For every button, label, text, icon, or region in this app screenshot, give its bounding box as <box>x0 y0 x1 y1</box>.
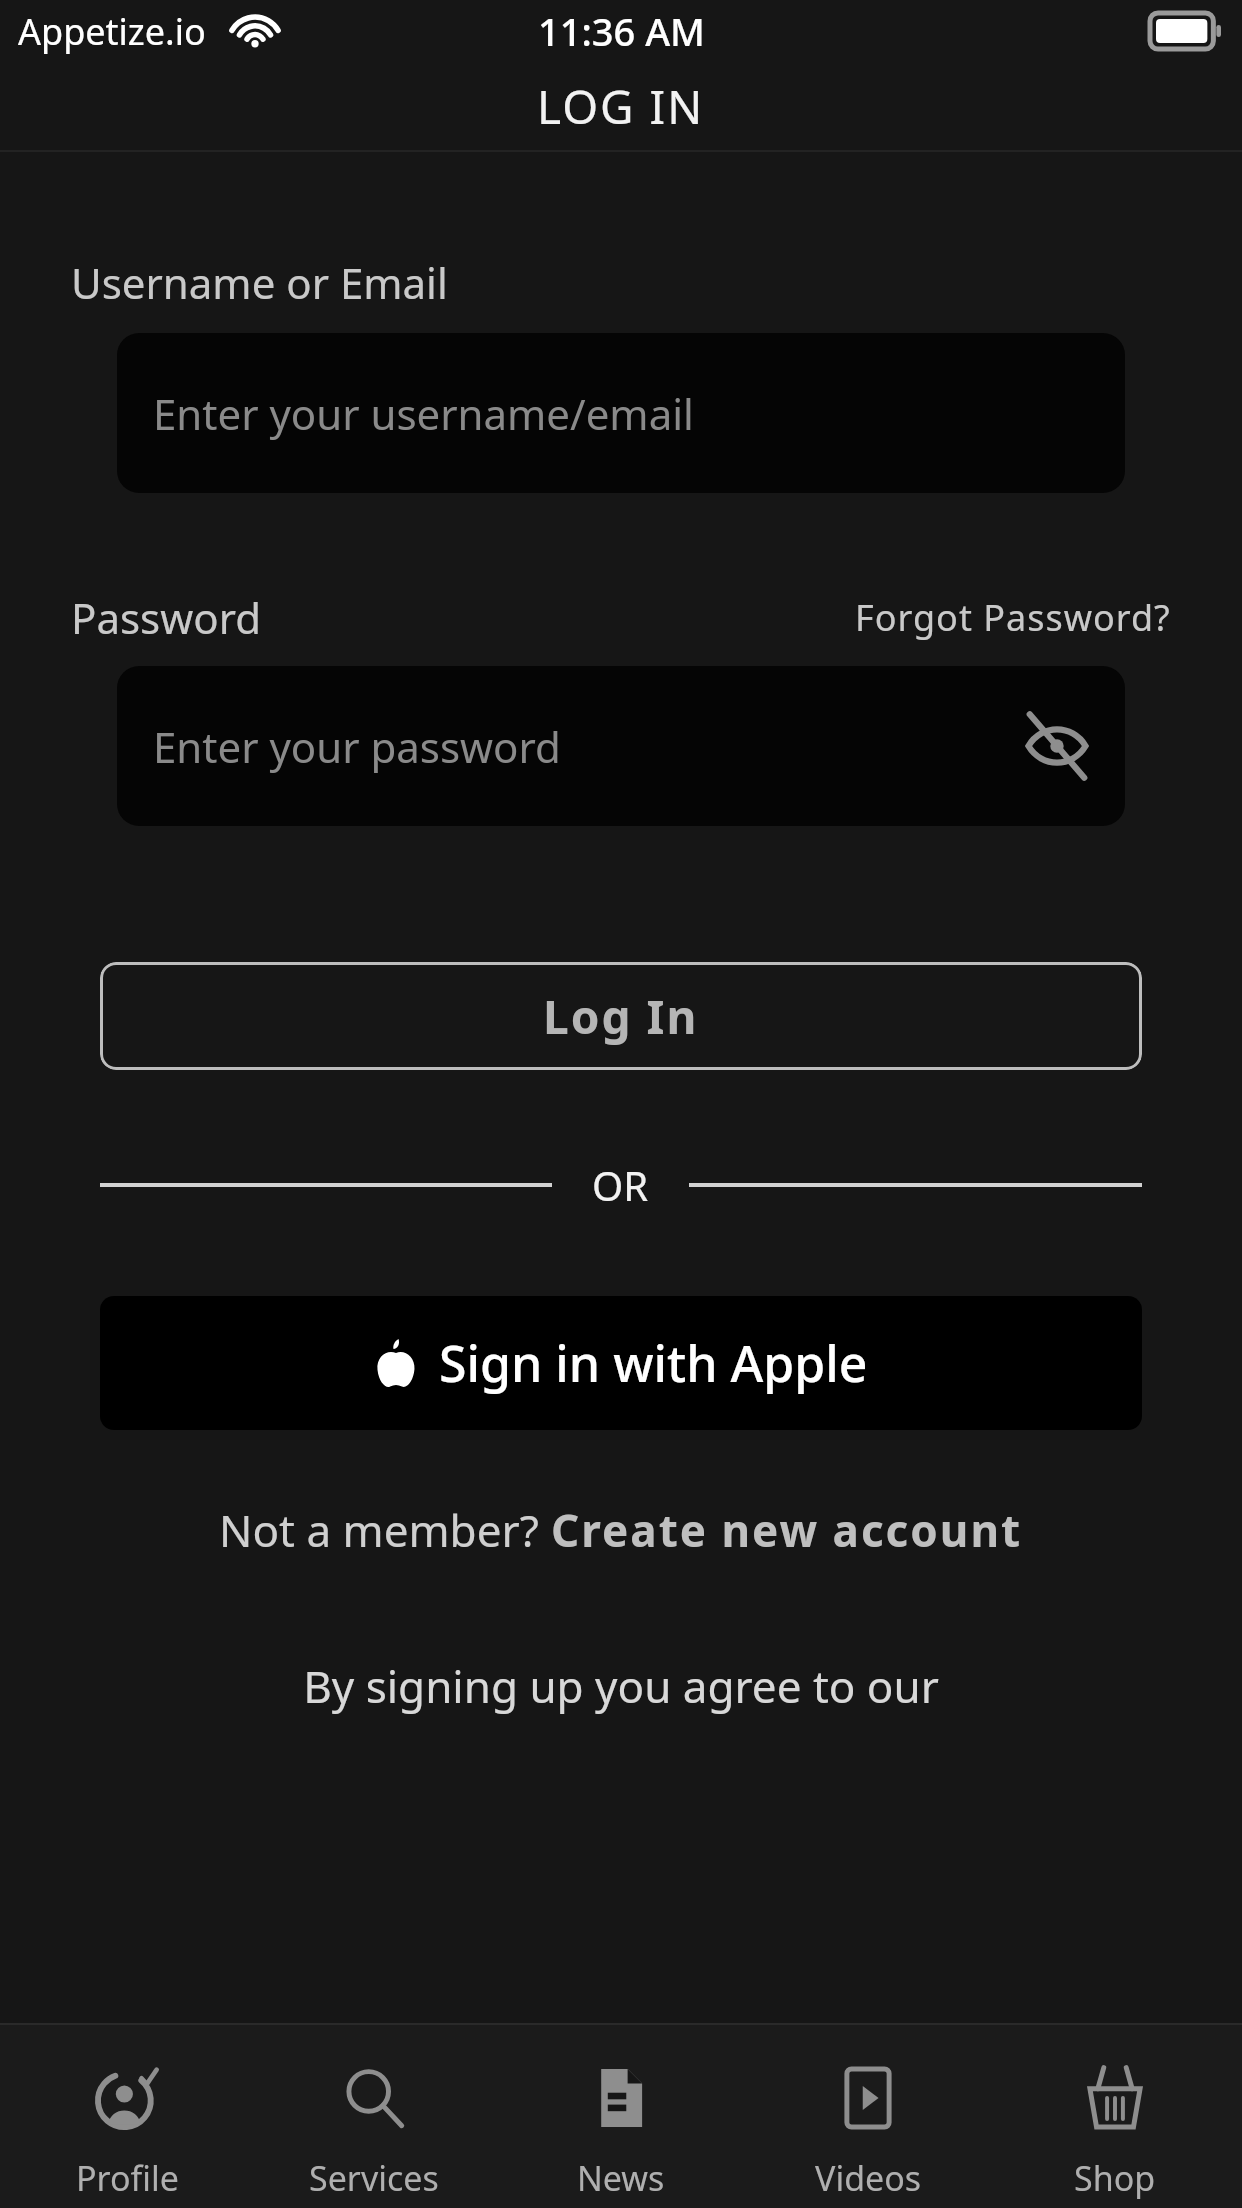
staticText: Videos <box>815 2155 922 2201</box>
staticText: OR <box>592 1158 649 1212</box>
staticText: Log In <box>543 985 699 1048</box>
button[interactable]: Create new account <box>551 1500 1023 1560</box>
staticText: LOG IN <box>537 75 705 138</box>
staticText: Enter your password <box>153 718 561 775</box>
button[interactable]: Shop <box>995 2023 1235 2208</box>
button[interactable]: Show password <box>1019 708 1095 784</box>
button[interactable]: Log In <box>100 962 1142 1070</box>
button[interactable]: Videos <box>748 2023 988 2208</box>
staticText: News <box>577 2155 665 2201</box>
staticText: Shop <box>1074 2155 1156 2201</box>
staticText: Appetize.io <box>18 7 206 56</box>
button[interactable]: Forgot Password? <box>855 593 1171 642</box>
staticText: By signing up you agree to our <box>0 1656 1242 1716</box>
staticText: Services <box>309 2155 439 2201</box>
button[interactable]: News <box>501 2023 741 2208</box>
button[interactable]: Profile <box>7 2023 247 2208</box>
button[interactable]: Services <box>254 2023 494 2208</box>
staticText: Create new account <box>551 1500 1023 1560</box>
staticText: Sign in with Apple <box>439 1329 868 1397</box>
staticText: 11:36 AM <box>538 5 705 57</box>
staticText: Password <box>71 589 261 646</box>
staticText: Profile <box>76 2155 179 2201</box>
button[interactable]: Sign in with Apple <box>100 1296 1142 1430</box>
button[interactable]: Enter your password <box>117 666 1125 826</box>
staticText: Username or Email <box>71 254 448 311</box>
staticText: Forgot Password? <box>855 593 1171 642</box>
staticText: Enter your username/email <box>153 385 694 442</box>
button[interactable]: Enter your username/email <box>117 333 1125 493</box>
staticText: Not a member? <box>219 1500 551 1560</box>
